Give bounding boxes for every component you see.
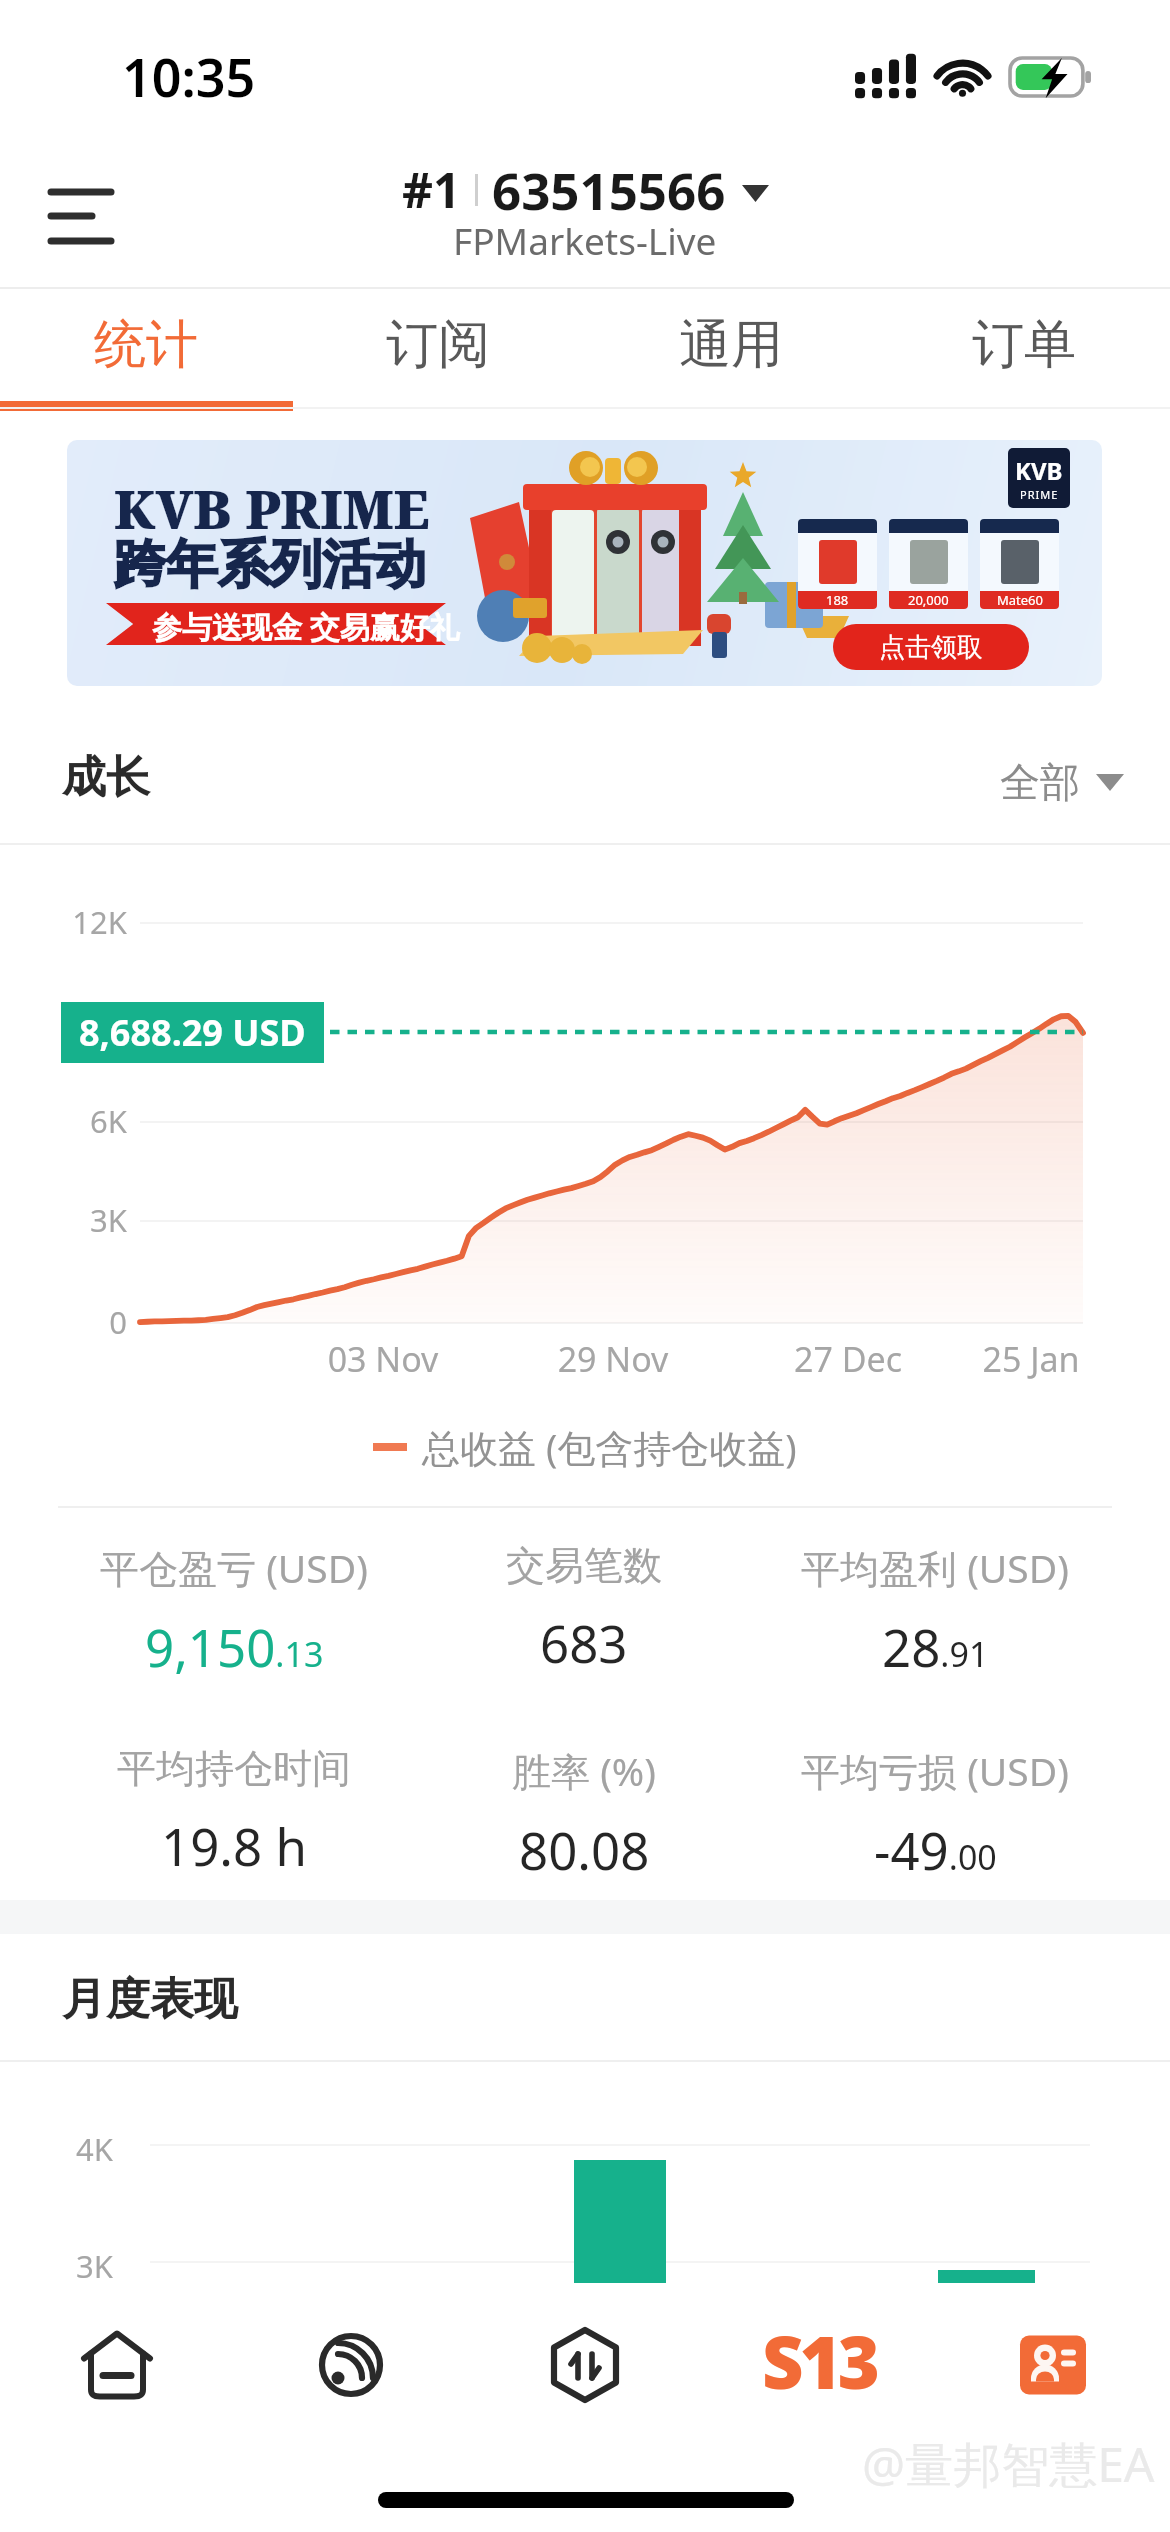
staticText: 10:35 [122, 41, 256, 112]
staticText: 通用 [679, 312, 783, 378]
staticText: #1 [402, 157, 461, 222]
button[interactable]: 订单 [877, 289, 1170, 401]
staticText: 平均盈利 (USD) [801, 1541, 1069, 1594]
staticText: 订单 [972, 312, 1076, 378]
staticText: 点击领取 [879, 631, 983, 664]
staticText: 8,688.29 USD [79, 1008, 306, 1057]
staticText: 平均持仓时间 [117, 1744, 351, 1793]
staticText: 03 Nov [283, 1336, 483, 1382]
staticText: KVB PRIME [114, 472, 430, 544]
staticText: 成长 [62, 750, 150, 805]
staticText: 订阅 [386, 312, 490, 378]
button[interactable]: Trade [468, 2280, 702, 2450]
button[interactable]: KVB PRIME [67, 440, 1102, 686]
staticText: FPMarkets-Live [453, 215, 717, 265]
staticText: 27 Dec [748, 1336, 948, 1382]
staticText: 跨年系列活动 [114, 532, 426, 598]
staticText: 平均亏损 (USD) [801, 1744, 1069, 1797]
staticText: 统计 [94, 312, 198, 378]
staticText: 9,150.13 [145, 1612, 324, 1681]
staticText: 6K [0, 1100, 127, 1142]
button[interactable]: S13 [702, 2280, 936, 2450]
button[interactable]: 统计 [0, 289, 292, 401]
staticText: 参与送现金 交易赢好礼 [152, 606, 460, 647]
button[interactable]: Profile [936, 2280, 1170, 2450]
button[interactable]: Signals [234, 2280, 468, 2450]
staticText: 全部 [1000, 757, 1080, 807]
button[interactable]: Menu [36, 170, 126, 260]
staticText: @量邦智慧EA [862, 2431, 1155, 2497]
staticText: 交易笔数 [506, 1541, 662, 1590]
staticText: 188 [826, 591, 849, 609]
staticText: 0 [0, 1301, 127, 1343]
staticText: 4K [76, 2128, 113, 2170]
staticText: KVB [1015, 454, 1063, 487]
staticText: 63515566 [492, 155, 726, 224]
staticText: 月度表现 [62, 1972, 238, 2027]
staticText: 12K [0, 901, 127, 943]
staticText: 总收益 (包含持仓收益) [422, 1421, 797, 1473]
staticText: S13 [762, 2312, 876, 2410]
staticText: 3K [0, 1199, 127, 1241]
button[interactable]: 全部 [1000, 757, 1124, 807]
button[interactable]: Home [0, 2280, 234, 2450]
button[interactable]: 通用 [584, 289, 877, 401]
staticText: 平仓盈亏 (USD) [100, 1541, 368, 1594]
button[interactable]: #1 [398, 153, 773, 226]
staticText: Mate60 [997, 591, 1043, 609]
staticText: PRIME [1020, 487, 1059, 502]
staticText: 29 Nov [513, 1336, 713, 1382]
button[interactable]: 订阅 [292, 289, 584, 401]
staticText: 80.08 [519, 1815, 650, 1884]
staticText: 胜率 (%) [512, 1744, 656, 1797]
staticText: 28.91 [882, 1612, 989, 1681]
staticText: 3K [76, 2245, 113, 2287]
staticText: -49.00 [874, 1815, 997, 1884]
staticText: 20,000 [908, 591, 949, 609]
staticText: 19.8 h [161, 1811, 307, 1880]
staticText: 25 Jan [931, 1336, 1131, 1382]
staticText: 683 [540, 1608, 628, 1677]
button[interactable]: 点击领取 [833, 624, 1029, 670]
